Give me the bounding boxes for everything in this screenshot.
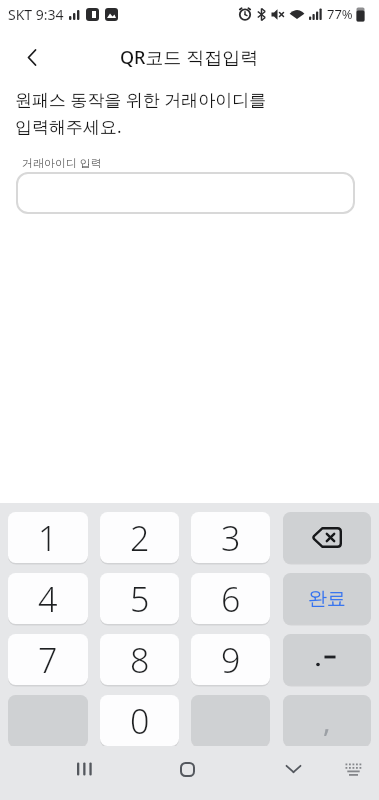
staticText: QR코드 직접입력 <box>120 45 259 70</box>
staticText: 5 <box>130 576 150 622</box>
staticText: 3 <box>221 515 241 561</box>
button[interactable] <box>12 37 52 77</box>
staticText: 9 <box>221 637 241 683</box>
button[interactable]: 5 <box>100 573 179 624</box>
button[interactable] <box>172 753 202 785</box>
button[interactable]: 3 <box>191 512 270 563</box>
staticText: 2 <box>130 515 150 561</box>
staticText: SKT 9:34 <box>8 5 64 24</box>
staticText: 원패스 동작을 위한 거래아이디를 입력해주세요. <box>15 88 267 138</box>
button[interactable] <box>283 634 371 685</box>
staticText: 4 <box>38 576 58 622</box>
staticText: 완료 <box>308 587 346 611</box>
staticText: , <box>323 702 331 740</box>
button[interactable] <box>340 754 366 784</box>
button[interactable] <box>16 172 355 214</box>
staticText: 8 <box>130 637 150 683</box>
staticText: 77% <box>327 5 353 23</box>
button[interactable]: 1 <box>8 512 88 563</box>
button[interactable] <box>69 753 99 785</box>
staticText: 1 <box>38 515 58 561</box>
staticText: 6 <box>221 576 241 622</box>
staticText: 0 <box>130 698 150 744</box>
button[interactable]: 4 <box>8 573 88 624</box>
button[interactable]: , <box>283 695 371 746</box>
button[interactable]: 2 <box>100 512 179 563</box>
button[interactable] <box>278 753 308 785</box>
button[interactable]: 8 <box>100 634 179 685</box>
button[interactable] <box>283 512 371 563</box>
staticText: 거래아이디 입력 <box>22 155 102 170</box>
staticText: 7 <box>38 637 58 683</box>
button[interactable]: 6 <box>191 573 270 624</box>
button[interactable]: 0 <box>100 695 179 746</box>
button[interactable]: 완료 <box>283 573 371 624</box>
button[interactable]: 9 <box>191 634 270 685</box>
button[interactable]: 7 <box>8 634 88 685</box>
